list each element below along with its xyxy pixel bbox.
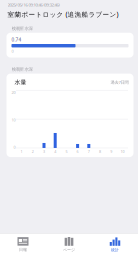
staticText: 室蘭ポートロック (追漁船ラブーン) bbox=[7, 10, 118, 19]
button[interactable]: 統計 bbox=[92, 233, 138, 252]
staticText: 7 bbox=[88, 149, 90, 154]
staticText: 検潮所 水深 bbox=[11, 66, 32, 72]
staticText: 8 bbox=[99, 149, 101, 154]
staticText: 0.74 bbox=[11, 36, 21, 43]
staticText: 10 bbox=[120, 149, 124, 154]
button[interactable]: 日報 bbox=[0, 233, 46, 252]
staticText: ページ bbox=[63, 247, 75, 252]
staticText: 水量 bbox=[14, 79, 26, 86]
staticText: 過去7日間 bbox=[110, 79, 128, 85]
staticText: 3 bbox=[43, 149, 45, 154]
staticText: 9 bbox=[110, 149, 112, 154]
staticText: 検潮所 水深 bbox=[11, 26, 32, 31]
staticText: 10 bbox=[11, 117, 15, 123]
staticText: 4 bbox=[54, 149, 56, 154]
staticText: 2025/05/16 09:10:46 (09:32:46) bbox=[7, 2, 59, 8]
button[interactable]: ページ bbox=[46, 233, 92, 252]
staticText: 日報 bbox=[19, 247, 27, 252]
staticText: 統計 bbox=[111, 247, 119, 252]
staticText: 1 bbox=[21, 149, 23, 154]
staticText: 6 bbox=[77, 149, 79, 154]
staticText: 2 bbox=[32, 149, 34, 154]
staticText: 0 bbox=[11, 49, 13, 54]
staticText: 0 bbox=[13, 145, 15, 150]
staticText: 20 bbox=[11, 90, 15, 95]
staticText: 5 bbox=[65, 149, 67, 154]
